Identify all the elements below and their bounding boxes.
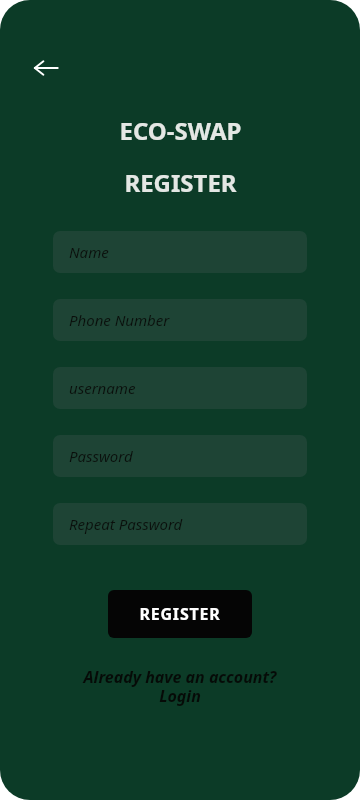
button[interactable]: Phone Number bbox=[53, 299, 307, 341]
button[interactable]: username bbox=[53, 367, 307, 409]
button[interactable]: Repeat Password bbox=[53, 503, 307, 545]
staticText: Already have an account? Login bbox=[65, 666, 295, 707]
button[interactable]: Back bbox=[24, 46, 68, 90]
staticText: Repeat Password bbox=[69, 514, 183, 534]
staticText: Name bbox=[69, 242, 109, 262]
button[interactable]: Name bbox=[53, 231, 307, 273]
button[interactable]: Already have an account? Login bbox=[65, 666, 295, 707]
button[interactable]: Password bbox=[53, 435, 307, 477]
staticText: username bbox=[69, 378, 136, 398]
staticText: REGISTER bbox=[124, 166, 237, 199]
button[interactable]: REGISTER bbox=[108, 590, 252, 638]
staticText: ECO-SWAP bbox=[119, 114, 242, 147]
staticText: Password bbox=[69, 446, 133, 466]
staticText: REGISTER bbox=[139, 603, 221, 625]
staticText: Phone Number bbox=[69, 310, 170, 330]
